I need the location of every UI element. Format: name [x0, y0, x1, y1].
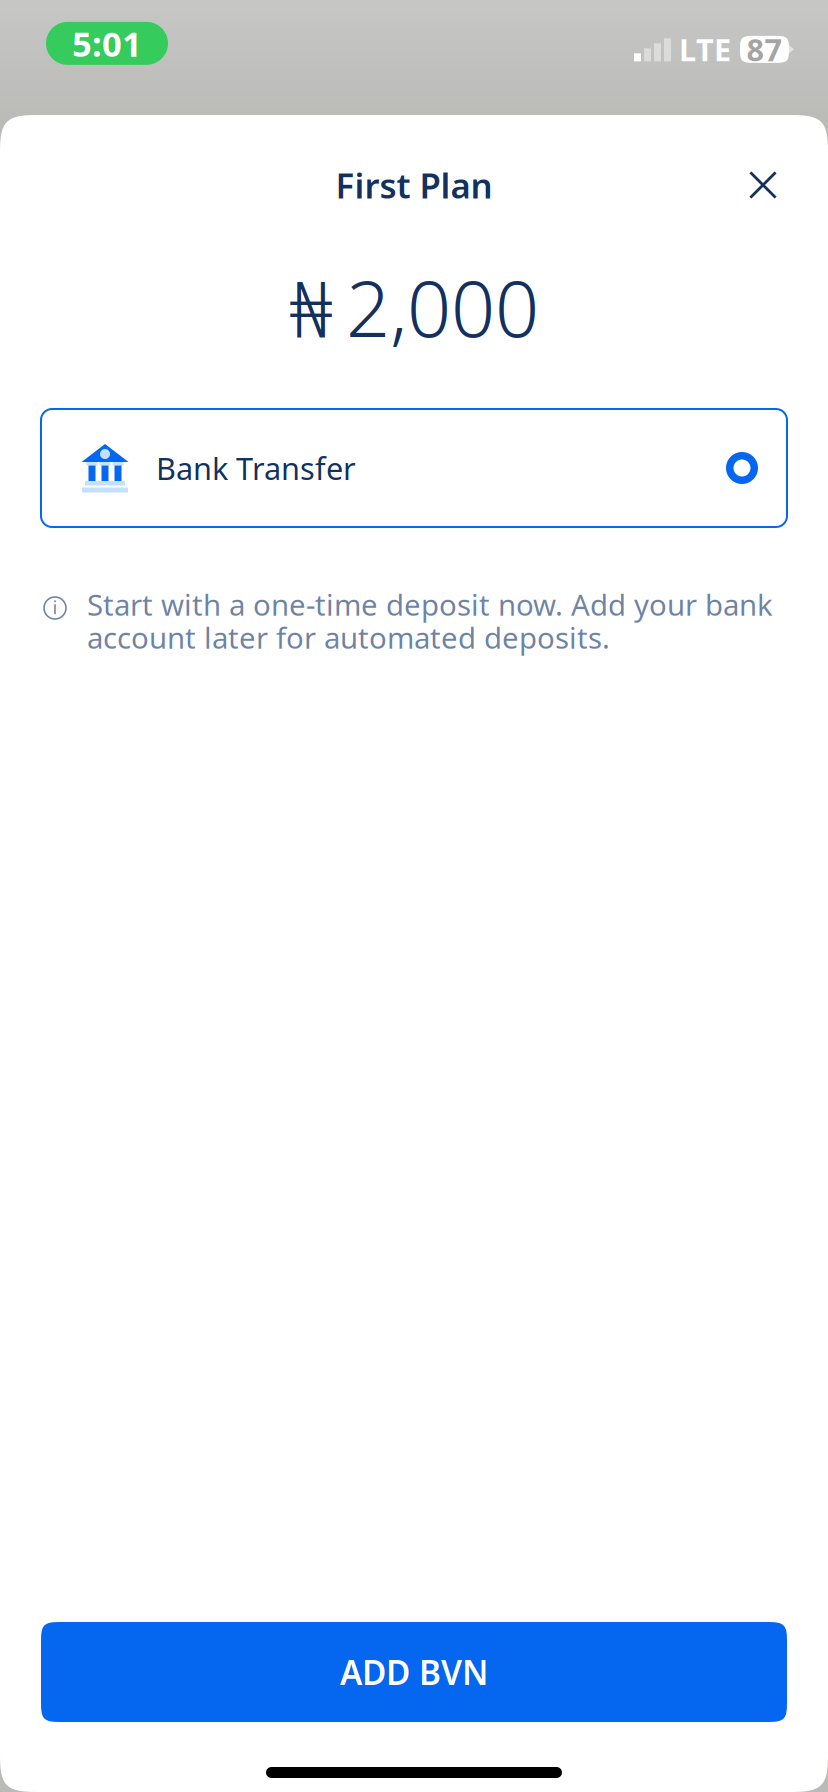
button[interactable]: ADD BVN	[41, 1622, 787, 1722]
staticText: ADD BVN	[340, 1650, 488, 1694]
staticText: ₦ 2,000	[289, 256, 539, 358]
staticText: Bank Transfer	[156, 448, 356, 488]
staticText: LTE	[679, 29, 731, 70]
staticText: 87	[746, 29, 782, 70]
button[interactable]: Close	[731, 153, 795, 217]
button[interactable]: Bank Transfer	[41, 409, 787, 527]
staticText: 5:01	[72, 20, 142, 66]
staticText: Start with a one-time deposit now. Add y…	[87, 585, 773, 657]
staticText: First Plan	[335, 162, 492, 208]
staticText: i	[52, 595, 57, 619]
